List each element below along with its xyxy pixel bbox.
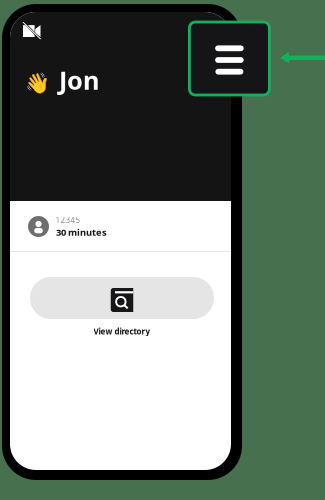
button[interactable]: View directory xyxy=(30,277,214,337)
staticText: 👋 xyxy=(25,72,50,95)
staticText: 30 minutes xyxy=(56,226,107,238)
staticText: 12345 xyxy=(55,214,80,225)
staticText: Jon xyxy=(59,63,99,97)
button[interactable]: Menu xyxy=(189,22,269,95)
staticText: View directory xyxy=(93,326,150,337)
